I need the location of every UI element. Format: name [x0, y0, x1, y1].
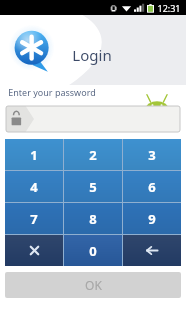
button[interactable]: Backspace [123, 235, 181, 266]
button[interactable]: 4 [5, 171, 63, 202]
button[interactable] [6, 106, 180, 132]
button[interactable]: 0 [64, 235, 122, 266]
staticText: OK [85, 277, 102, 293]
staticText: 9 [148, 210, 156, 228]
staticText: 3 [148, 146, 156, 164]
staticText: 12:31 [157, 2, 181, 14]
button[interactable]: 9 [123, 203, 181, 234]
staticText: 7 [30, 210, 38, 228]
staticText: 4 [30, 178, 38, 196]
staticText: 0 [89, 242, 97, 260]
button[interactable]: 8 [64, 203, 122, 234]
button[interactable]: OK [5, 272, 181, 298]
staticText: Login [72, 45, 112, 65]
button[interactable]: 6 [123, 171, 181, 202]
button[interactable]: 3 [123, 139, 181, 170]
staticText: 1 [30, 146, 38, 164]
staticText: Enter your password [8, 86, 96, 98]
staticText: 8 [89, 210, 97, 228]
button[interactable]: 1 [5, 139, 63, 170]
staticText: 6 [148, 178, 156, 196]
button[interactable]: 2 [64, 139, 122, 170]
button[interactable]: 7 [5, 203, 63, 234]
button[interactable]: 5 [64, 171, 122, 202]
staticText: 5 [89, 178, 97, 196]
button[interactable]: Clear [5, 235, 63, 266]
staticText: 2 [89, 146, 97, 164]
